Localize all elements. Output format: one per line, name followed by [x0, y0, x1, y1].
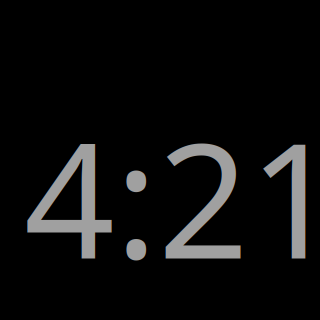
staticText: 4:21 — [24, 92, 320, 302]
button[interactable]: 4:21 — [24, 92, 320, 302]
